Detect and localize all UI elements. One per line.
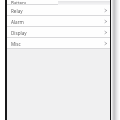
other: Open	[104, 19, 107, 24]
button[interactable]: Relay	[7, 5, 110, 16]
button[interactable]: Display	[7, 27, 110, 38]
button[interactable]: Misc	[7, 38, 110, 49]
other: Open	[104, 30, 107, 35]
other: Open	[104, 41, 107, 46]
button[interactable]: Battery	[7, 0, 110, 5]
other: Open	[104, 8, 107, 13]
button[interactable]: Alarm	[7, 16, 110, 27]
staticText: Misc	[11, 41, 21, 47]
staticText: Relay	[11, 8, 23, 14]
staticText: Display	[11, 30, 27, 36]
staticText: Alarm	[11, 19, 24, 25]
staticText: Battery	[11, 0, 27, 5]
